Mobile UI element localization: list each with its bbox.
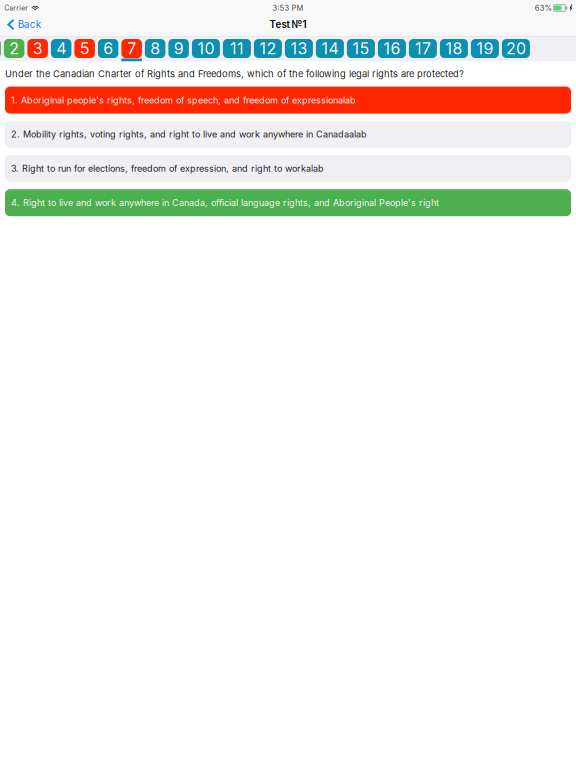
button[interactable]: 2 [4,39,24,61]
button[interactable]: 11 [223,39,251,61]
staticText: Back [18,18,41,30]
staticText: 6 [103,39,113,58]
button[interactable]: 9 [168,39,189,61]
staticText: 16 [383,39,400,58]
staticText: Carrier [4,4,28,12]
staticText: 9 [174,39,184,58]
button[interactable]: 6 [98,39,118,61]
staticText: 4. Right to live and work anywhere in Ca… [11,197,439,208]
button[interactable]: 19 [471,39,499,61]
staticText: 7 [127,39,136,58]
button[interactable]: Back [4,16,44,32]
staticText: 3. Right to run for elections, freedom o… [11,163,324,174]
staticText: 13 [290,39,307,58]
button[interactable]: 2. Mobility rights, voting rights, and r… [5,121,571,148]
staticText: 63% [535,3,552,12]
staticText: 18 [445,39,462,58]
staticText: 17 [415,39,431,58]
button[interactable]: 20 [502,39,530,61]
button[interactable]: 14 [316,39,344,61]
staticText: Test №1 [269,19,306,30]
staticText: 2 [9,39,19,58]
button[interactable]: 10 [192,39,220,61]
staticText: 10 [197,39,214,58]
button[interactable]: 1 [0,39,1,61]
staticText: 8 [150,39,160,58]
staticText: Under the Canadian Charter of Rights and… [5,68,464,79]
staticText: 3 [33,39,43,58]
button[interactable]: 3 [27,39,48,61]
staticText: 12 [259,39,276,58]
staticText: 11 [230,39,244,58]
button[interactable]: 7 [121,39,142,61]
staticText: 1. Aboriginal people's rights, freedom o… [11,95,356,106]
button[interactable]: 5 [74,39,95,61]
button[interactable]: 15 [347,39,375,61]
button[interactable]: 17 [409,39,437,61]
button[interactable]: 8 [145,39,165,61]
staticText: 4 [56,39,66,58]
button[interactable]: 1. Aboriginal people's rights, freedom o… [5,87,571,114]
button[interactable]: 18 [440,39,468,61]
button[interactable]: 12 [254,39,282,61]
staticText: 3:53 PM [272,3,303,12]
button[interactable]: 4. Right to live and work anywhere in Ca… [5,189,571,216]
staticText: 19 [476,39,493,58]
button[interactable]: 3. Right to run for elections, freedom o… [5,155,571,182]
button[interactable]: 4 [51,39,71,61]
staticText: 20 [506,39,526,58]
staticText: 14 [321,39,338,58]
button[interactable]: 16 [378,39,406,61]
button[interactable]: 13 [285,39,313,61]
staticText: 15 [352,39,369,58]
staticText: 5 [80,39,90,58]
staticText: 2. Mobility rights, voting rights, and r… [11,129,367,140]
